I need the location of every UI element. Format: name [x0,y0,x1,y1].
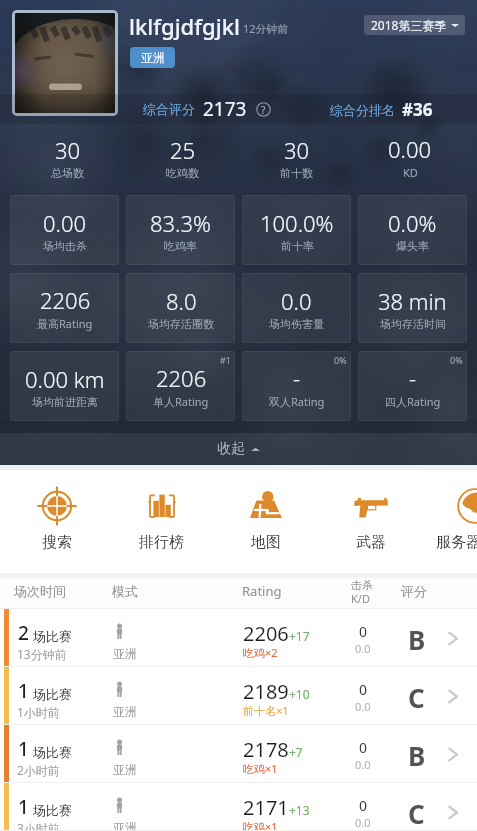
staticText: 1 [18,794,29,820]
staticText: 综合评分 [143,101,195,117]
staticText: 3小时前 [17,820,60,831]
button[interactable]: 0.0 [242,273,351,343]
staticText: 最高Rating [37,316,93,331]
staticText: 亚洲 [113,704,137,719]
button[interactable]: - [242,351,351,421]
staticText: 38 min [378,286,447,316]
button[interactable]: 2206 [126,351,235,421]
staticText: 2206 [40,285,91,315]
button[interactable]: 83.3% [126,195,235,265]
staticText: 0.0% [388,208,437,238]
staticText: 评分 [401,583,427,599]
button[interactable]: 0.00 [353,124,467,190]
button[interactable]: 武器 [318,465,423,573]
staticText: #36 [402,98,433,121]
staticText: #1 [220,354,231,366]
staticText: 0.00 [43,208,87,238]
staticText: 0.0 [355,641,371,656]
staticText: 0% [334,354,347,366]
button[interactable]: 搜索 [4,465,109,573]
staticText: +7 [289,744,303,760]
staticText: KD [403,165,418,180]
button[interactable]: 30 [10,124,125,190]
staticText: 场比赛 [33,686,72,702]
staticText: 吃鸡×1 [243,819,278,831]
staticText: 四人Rating [385,394,441,409]
button[interactable]: 0.0% [358,195,467,265]
button[interactable]: 1 [0,667,477,725]
button[interactable]: 2 [0,609,477,667]
button[interactable]: 综合分排名 [330,98,433,121]
button[interactable]: 帮助 [256,102,271,117]
staticText: 地图 [251,533,281,552]
staticText: 场均伤害量 [269,317,324,331]
staticText: 吃鸡率 [164,239,197,253]
staticText: 场比赛 [33,802,72,818]
button[interactable]: 0.00 [10,195,119,265]
staticText: 模式 [112,583,138,599]
staticText: 1 [18,736,29,762]
staticText: 2 [18,620,29,646]
staticText: 2178 [243,736,289,763]
staticText: 综合分排名 [330,102,395,118]
staticText: C [408,680,425,715]
staticText: 场均前进距离 [32,395,98,409]
button[interactable]: 38 min [358,273,467,343]
staticText: +17 [289,628,310,644]
staticText: lklfgjdfgjkl [129,11,240,41]
staticText: K/D [351,591,370,606]
staticText: 0 [359,738,368,757]
staticText: 8.0 [166,286,197,316]
button[interactable]: 收起 [0,433,477,465]
button[interactable]: 8.0 [126,273,235,343]
button[interactable]: 排行榜 [109,465,214,573]
button[interactable]: 2206 [10,273,119,343]
staticText: 2173 [203,96,247,122]
staticText: 吃鸡数 [166,166,199,180]
staticText: 单人Rating [153,394,209,409]
staticText: 1 [18,678,29,704]
button[interactable]: - [358,351,467,421]
staticText: 搜索 [42,533,72,552]
button[interactable]: 1 [0,725,477,783]
staticText: - [293,363,301,393]
staticText: 总场数 [51,166,84,180]
staticText: 2206 [243,620,289,647]
staticText: 前十数 [280,166,313,180]
button[interactable]: 2018第三赛季 [364,15,465,35]
button[interactable]: 服务器 [422,465,477,573]
button[interactable]: 亚洲 [130,47,175,68]
staticText: 0.00 km [25,364,105,394]
staticText: 0.0 [355,699,371,714]
staticText: 亚洲 [113,762,137,777]
staticText: 30 [55,135,81,165]
staticText: 0.00 [388,134,432,164]
staticText: 收起 [217,440,245,458]
staticText: Rating [242,582,282,600]
staticText: 0 [359,680,368,699]
staticText: ? [261,103,266,117]
staticText: 0 [359,622,368,641]
staticText: 83.3% [150,208,211,238]
staticText: +13 [289,802,310,818]
button[interactable]: 综合评分 [143,96,271,122]
staticText: 2171 [243,794,289,821]
staticText: 吃鸡×1 [243,761,278,776]
button[interactable]: 0.00 km [10,351,119,421]
staticText: 武器 [356,533,386,552]
staticText: 0% [450,354,463,366]
button[interactable]: 地图 [213,465,318,573]
button[interactable]: 1 [0,783,477,831]
staticText: 2206 [156,363,207,393]
staticText: C [408,796,425,831]
staticText: 2小时前 [17,762,60,778]
button[interactable]: 30 [239,124,353,190]
staticText: 亚洲 [141,50,165,65]
staticText: 0.0 [355,757,371,772]
button[interactable]: 25 [125,124,239,190]
staticText: 0.0 [281,286,312,316]
staticText: 场均存活时间 [380,317,446,331]
staticText: 双人Rating [269,394,325,409]
button[interactable]: 100.0% [242,195,351,265]
staticText: 场比赛 [33,744,72,760]
